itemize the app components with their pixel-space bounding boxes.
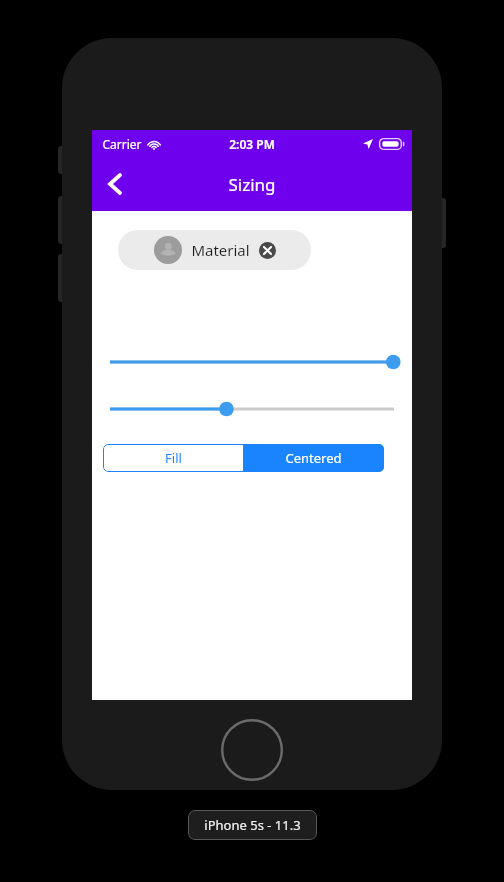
button[interactable]: Slider — [110, 398, 394, 420]
staticText: Centered — [285, 449, 342, 467]
button[interactable]: Material — [118, 230, 311, 270]
staticText: Material — [191, 240, 250, 260]
button[interactable]: Slider — [110, 351, 394, 373]
button[interactable]: Fill — [103, 444, 243, 472]
button[interactable]: Centered — [243, 444, 384, 472]
staticText: 2:03 PM — [229, 136, 275, 152]
staticText: Carrier — [102, 136, 142, 152]
button[interactable]: Remove Material — [259, 242, 276, 259]
button[interactable]: iPhone 5s - 11.3 — [188, 810, 317, 840]
button[interactable]: Back — [92, 161, 138, 207]
staticText: iPhone 5s - 11.3 — [204, 816, 301, 834]
staticText: Fill — [165, 449, 182, 467]
staticText: Sizing — [228, 173, 276, 196]
